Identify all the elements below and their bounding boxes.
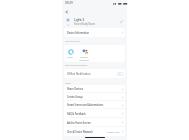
button[interactable]: Smart Scenes and Automations (64, 101, 125, 109)
button[interactable]: Light 3 (62, 16, 127, 27)
button[interactable]: Device Information (64, 28, 125, 37)
button[interactable]: Offline Notification (64, 69, 125, 78)
button[interactable]: Back (63, 8, 70, 15)
button[interactable]: Alexa (64, 45, 77, 59)
staticText: Create Group (67, 95, 83, 99)
button[interactable]: Google Assistant (77, 45, 91, 62)
staticText: Smart Scenes and Automations (67, 103, 104, 107)
staticText: Third-party Voice (65, 40, 80, 43)
staticText: FAQ & Feedback (67, 112, 86, 116)
staticText: Device Information (67, 31, 90, 35)
staticText: 09:29 (65, 1, 73, 5)
staticText: Check Now (107, 130, 120, 133)
staticText: Google Assistant (79, 56, 89, 62)
button[interactable]: FAQ & Feedback (64, 109, 125, 118)
staticText: Share Devices (67, 87, 83, 91)
button[interactable]: Check Device Network (64, 127, 125, 136)
button[interactable]: Create Group (64, 93, 125, 101)
staticText: Add to Home Screen (67, 121, 91, 125)
staticText: Device Offline Notification (65, 64, 88, 67)
staticText: Others (65, 82, 71, 85)
staticText: Alexa (67, 56, 73, 59)
staticText: Offline Notification (67, 72, 91, 76)
staticText: Check Device Network (67, 130, 93, 134)
staticText: Light 3 (74, 17, 85, 21)
button[interactable]: Edit name (119, 19, 124, 24)
staticText: Room/Study Room (74, 22, 96, 26)
button[interactable]: Add to Home Screen (64, 118, 125, 127)
button[interactable]: Share Devices (64, 85, 125, 93)
